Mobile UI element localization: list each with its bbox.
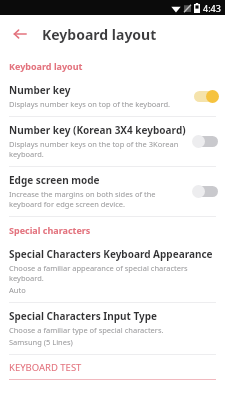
button[interactable]: Number key <box>0 77 225 116</box>
staticText: Number key (Korean 3X4 keyboard) <box>9 123 186 137</box>
staticText: Keyboard layout <box>42 25 157 44</box>
staticText: Keyboard layout <box>9 60 83 72</box>
staticText: Auto <box>9 285 26 295</box>
staticText: Edge screen mode <box>9 173 100 187</box>
staticText: Choose a familiar appearance of special … <box>9 263 216 283</box>
staticText: KEYBOARD TEST <box>9 361 82 374</box>
button[interactable]: Toggle on <box>192 89 219 103</box>
staticText: Displays number keys on top of the keybo… <box>9 99 171 109</box>
button[interactable]: Special Characters Keyboard Appearance <box>0 241 225 302</box>
staticText: Samsung (5 Lines) <box>9 337 73 347</box>
button[interactable]: KEYBOARD TEST <box>0 361 225 380</box>
button[interactable]: Toggle off <box>192 184 219 198</box>
staticText: Increase the margins on both sides of th… <box>9 189 186 209</box>
staticText: Special Characters Keyboard Appearance <box>9 247 213 261</box>
staticText: Special Characters Input Type <box>9 309 157 323</box>
staticText: Choose a familiar type of special charac… <box>9 325 164 335</box>
button[interactable]: Special Characters Input Type <box>0 303 225 354</box>
staticText: Special characters <box>9 224 91 236</box>
button[interactable]: Back <box>5 19 35 49</box>
button[interactable]: Edge screen mode <box>0 167 225 216</box>
button[interactable]: Number key (Korean 3X4 keyboard) <box>0 117 225 166</box>
staticText: Number key <box>9 83 71 97</box>
button[interactable]: Toggle off <box>192 134 219 148</box>
staticText: 4:43 <box>203 2 221 14</box>
staticText: Displays number keys on the top of the 3… <box>9 139 186 159</box>
